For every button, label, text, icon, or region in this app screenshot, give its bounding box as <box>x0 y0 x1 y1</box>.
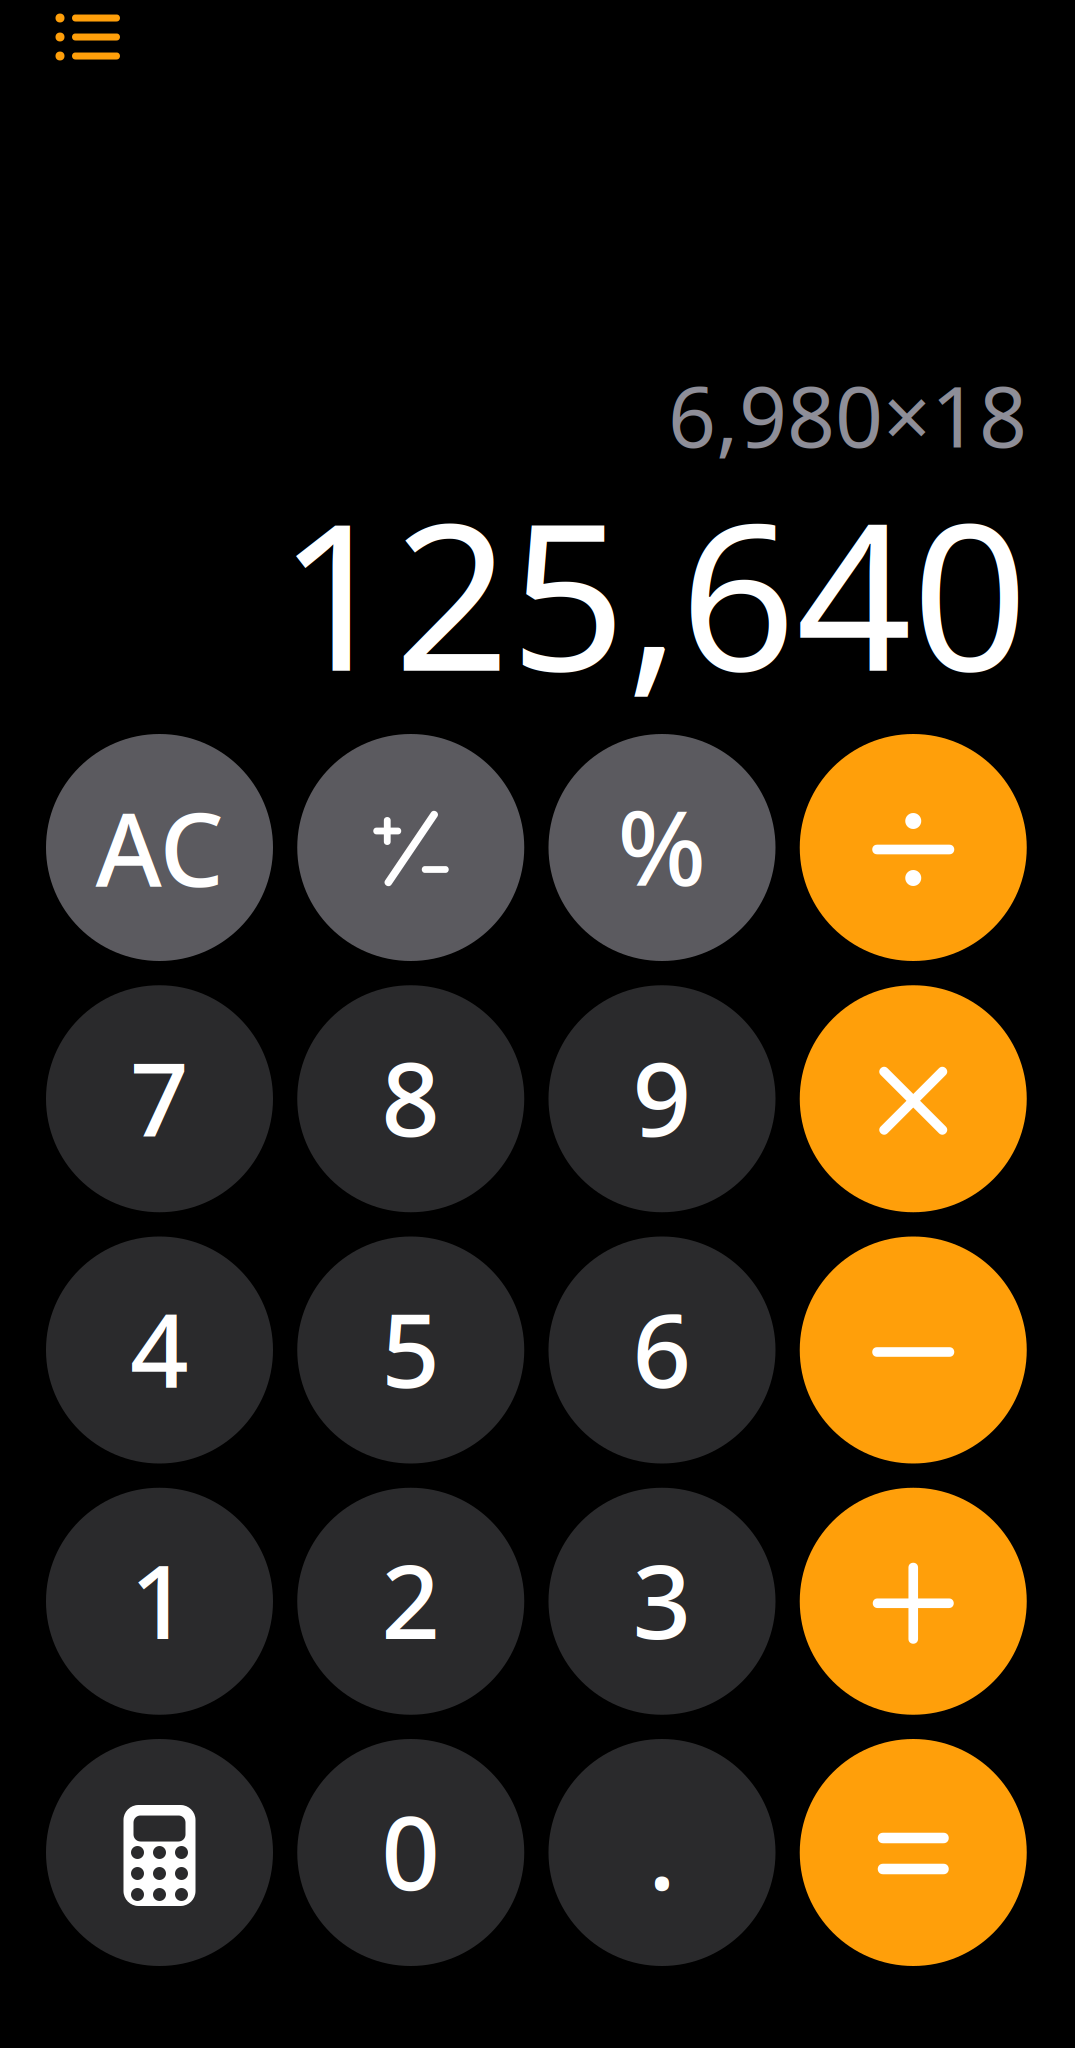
staticText: 125,640 <box>278 457 1028 726</box>
button[interactable]: Percent <box>548 734 775 961</box>
button[interactable]: 4 <box>46 1236 273 1463</box>
staticText: 3 <box>632 1531 691 1667</box>
staticText: % <box>617 776 706 914</box>
button[interactable]: Divide <box>800 734 1027 961</box>
button[interactable]: 5 <box>297 1236 524 1463</box>
staticText: 4 <box>130 1280 189 1416</box>
staticText: . <box>648 1782 676 1919</box>
staticText: 6 <box>632 1280 691 1416</box>
button[interactable]: Minus <box>800 1236 1027 1463</box>
button[interactable]: 9 <box>548 985 775 1212</box>
button[interactable]: Multiply <box>800 985 1027 1212</box>
button[interactable]: Equals <box>800 1739 1027 1966</box>
button[interactable]: 6 <box>548 1236 775 1463</box>
staticText: 5 <box>381 1280 440 1416</box>
button[interactable]: Plus <box>800 1488 1027 1715</box>
button[interactable]: Decimal Point <box>548 1739 775 1966</box>
staticText: 7 <box>130 1029 189 1165</box>
button[interactable]: 8 <box>297 985 524 1212</box>
staticText: 8 <box>381 1029 440 1165</box>
button[interactable]: 1 <box>46 1488 273 1715</box>
button[interactable]: Calculator Mode <box>46 1739 273 1966</box>
button[interactable]: 0 <box>297 1739 524 1966</box>
staticText: 2 <box>381 1531 440 1667</box>
staticText: 1 <box>130 1531 189 1667</box>
button[interactable]: 7 <box>46 985 273 1212</box>
staticText: 0 <box>381 1782 440 1919</box>
button[interactable]: 2 <box>297 1488 524 1715</box>
button[interactable]: Plus Minus <box>297 734 524 961</box>
staticText: 6,980×18 <box>668 359 1027 471</box>
button[interactable]: 3 <box>548 1488 775 1715</box>
button[interactable]: History <box>29 0 149 87</box>
staticText: 9 <box>632 1029 691 1165</box>
staticText: AC <box>95 780 223 915</box>
button[interactable]: All Clear <box>46 734 273 961</box>
